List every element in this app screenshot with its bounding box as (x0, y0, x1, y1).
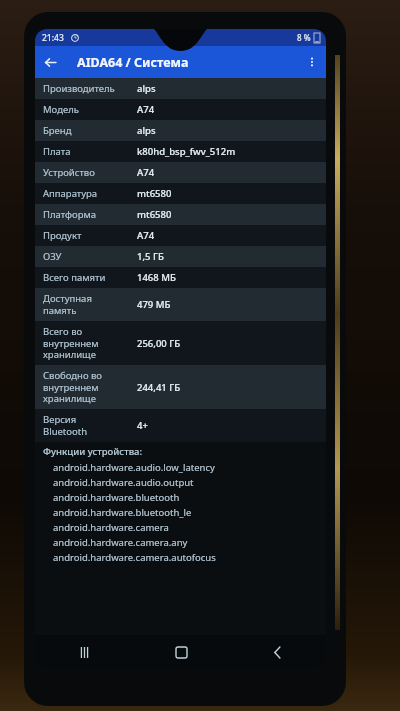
button[interactable]: Модель (35, 99, 326, 120)
staticText: Производитель (43, 82, 131, 95)
button[interactable]: Back (260, 635, 294, 669)
button[interactable]: Всего во внутреннем хранилище (35, 321, 326, 365)
button[interactable]: Аппаратура (35, 183, 326, 204)
button[interactable]: ОЗУ (35, 246, 326, 267)
staticText: Функции устройства: (43, 445, 143, 458)
button[interactable]: Версия Bluetooth (35, 409, 326, 442)
staticText: 4+ (137, 419, 318, 432)
staticText: mt6580 (137, 187, 318, 200)
staticText: Плата (43, 145, 131, 158)
button[interactable]: Бренд (35, 120, 326, 141)
staticText: 479 МБ (137, 298, 318, 311)
staticText: android.hardware.camera.autofocus (53, 551, 216, 564)
staticText: Аппаратура (43, 187, 131, 200)
staticText: Всего во внутреннем хранилище (43, 325, 131, 361)
staticText: mt6580 (137, 208, 318, 221)
staticText: k80hd_bsp_fwv_512m (137, 145, 318, 158)
staticText: android.hardware.camera.any (53, 536, 188, 549)
staticText: AIDA64 / Система (77, 54, 189, 71)
staticText: A74 (137, 166, 318, 179)
button[interactable]: Производитель (35, 78, 326, 99)
button[interactable]: Home (164, 635, 198, 669)
staticText: 1,5 ГБ (137, 250, 318, 263)
button[interactable]: Back (35, 47, 65, 77)
staticText: Бренд (43, 124, 131, 137)
staticText: A74 (137, 103, 318, 116)
staticText: alps (137, 82, 318, 95)
button[interactable]: Устройство (35, 162, 326, 183)
staticText: ОЗУ (43, 250, 131, 263)
staticText: 8 % (297, 32, 311, 43)
staticText: alps (137, 124, 318, 137)
staticText: 1468 МБ (137, 271, 318, 284)
staticText: A74 (137, 229, 318, 242)
button[interactable]: More options (298, 48, 326, 76)
staticText: Версия Bluetooth (43, 413, 131, 438)
button[interactable]: Платформа (35, 204, 326, 225)
button[interactable]: Доступная память (35, 288, 326, 321)
staticText: Продукт (43, 229, 131, 242)
staticText: Устройство (43, 166, 131, 179)
button[interactable]: Плата (35, 141, 326, 162)
button[interactable]: Recents (67, 635, 101, 669)
staticText: android.hardware.audio.low_latency (53, 461, 215, 474)
staticText: android.hardware.camera (53, 521, 169, 534)
staticText: android.hardware.bluetooth_le (53, 506, 192, 519)
staticText: Модель (43, 103, 131, 116)
button[interactable]: Всего памяти (35, 267, 326, 288)
staticText: Платформа (43, 208, 131, 221)
staticText: Свободно во внутреннем хранилище (43, 369, 131, 405)
staticText: android.hardware.bluetooth (53, 491, 180, 504)
staticText: 256,00 ГБ (137, 337, 318, 350)
staticText: 244,41 ГБ (137, 381, 318, 394)
staticText: android.hardware.audio.output (53, 476, 194, 489)
staticText: Всего памяти (43, 271, 131, 284)
staticText: Доступная память (43, 292, 131, 317)
staticText: 21:43 (42, 32, 64, 44)
button[interactable]: Продукт (35, 225, 326, 246)
button[interactable]: Свободно во внутреннем хранилище (35, 365, 326, 409)
